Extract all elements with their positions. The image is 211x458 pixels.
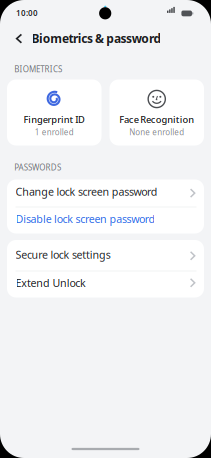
button[interactable]: Fingerprint ID xyxy=(7,79,101,145)
button[interactable]: Back xyxy=(10,30,28,48)
staticText: Face Recognition xyxy=(119,113,194,126)
button[interactable]: Disable lock screen password xyxy=(7,207,204,233)
staticText: Fingerprint ID xyxy=(24,113,85,126)
staticText: Change lock screen password xyxy=(15,184,158,199)
button[interactable]: Secure lock settings xyxy=(7,240,204,271)
staticText: Secure lock settings xyxy=(15,248,111,262)
staticText: BIOMETRICS xyxy=(14,64,62,74)
button[interactable]: Extend Unlock xyxy=(7,271,204,297)
staticText: 10:00 xyxy=(16,8,38,18)
button[interactable]: Change lock screen password xyxy=(7,179,204,207)
staticText: Biometrics & password xyxy=(31,30,161,46)
staticText: Extend Unlock xyxy=(15,276,86,290)
staticText: PASSWORDS xyxy=(14,162,61,173)
staticText: Disable lock screen password xyxy=(15,212,155,226)
staticText: 1 enrolled xyxy=(35,127,74,137)
button[interactable]: Face Recognition xyxy=(109,79,204,145)
staticText: None enrolled xyxy=(129,127,184,137)
